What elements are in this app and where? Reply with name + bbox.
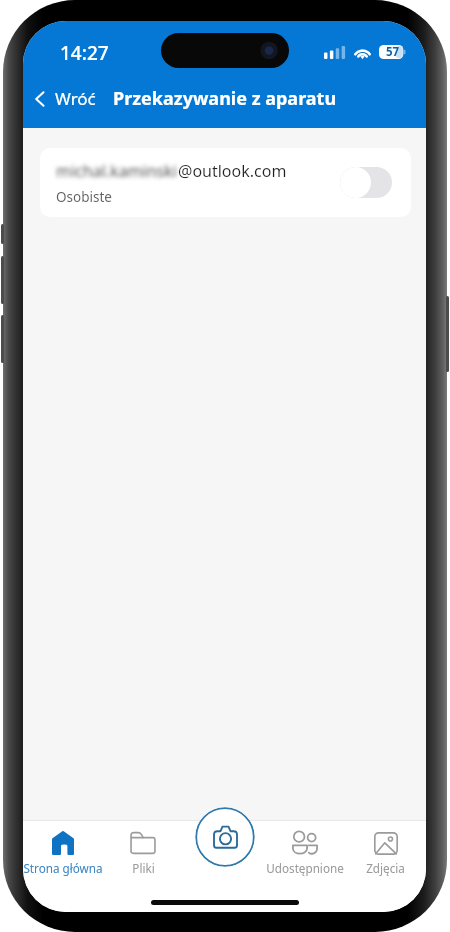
button[interactable]: Udostępnione: [264, 821, 345, 876]
staticText: @outlook.com: [178, 160, 287, 182]
staticText: 14:27: [60, 40, 109, 66]
button[interactable]: Przelacznik przekazywania z aparatu: [340, 167, 392, 198]
button[interactable]: michal.kaminski: [40, 148, 411, 217]
staticText: Udostępnione: [266, 860, 344, 876]
staticText: 57: [386, 44, 400, 60]
staticText: michal.kaminski: [56, 160, 177, 182]
staticText: Pliki: [132, 860, 155, 876]
button[interactable]: Zdjęcia: [345, 821, 426, 876]
staticText: Przekazywanie z aparatu: [113, 86, 337, 111]
staticText: Zdjęcia: [366, 860, 405, 876]
button[interactable]: Pliki: [103, 821, 183, 876]
button[interactable]: Wróć: [23, 79, 100, 118]
button[interactable]: Aparat: [195, 807, 255, 867]
staticText: Strona główna: [23, 860, 103, 876]
staticText: Osobiste: [56, 188, 112, 206]
staticText: Wróć: [55, 87, 96, 110]
button[interactable]: Strona główna: [23, 821, 103, 876]
